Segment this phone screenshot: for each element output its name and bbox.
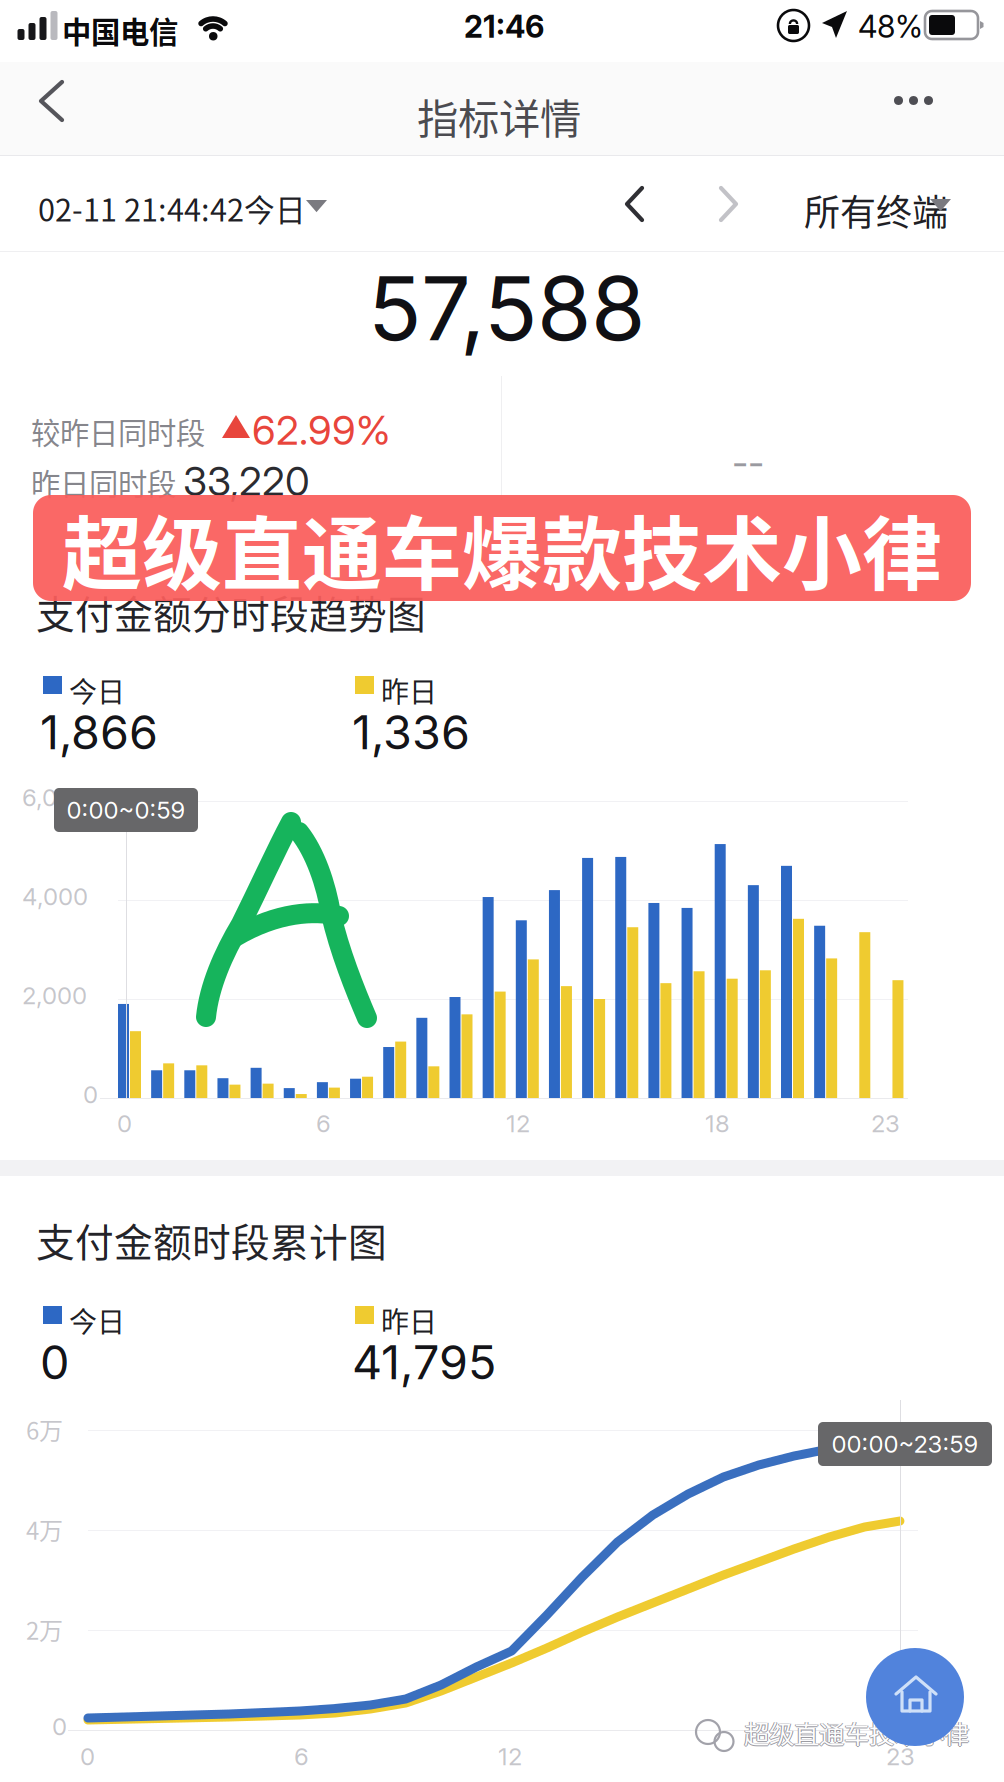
staticText: 0: [117, 1109, 132, 1138]
button[interactable]: Previous: [598, 156, 670, 252]
staticText: 6万: [26, 1412, 63, 1447]
staticText: 33,220: [183, 457, 310, 505]
staticText: 23: [871, 1109, 900, 1138]
staticText: 02-11 21:44:42今日: [38, 186, 306, 230]
staticText: 1,336: [352, 704, 470, 760]
staticText: 6,000: [22, 783, 87, 812]
button[interactable]: Next: [692, 156, 764, 252]
staticText: 2,000: [22, 981, 87, 1010]
staticText: 今日: [69, 670, 125, 710]
staticText: 支付金额时段累计图: [36, 1212, 387, 1268]
staticText: 21:46: [464, 8, 544, 45]
staticText: 超级直通车技术小律: [744, 1715, 969, 1752]
staticText: 1,866: [40, 704, 158, 760]
staticText: 41,795: [352, 1334, 496, 1390]
staticText: 超级直通车爆款技术小律: [62, 490, 942, 606]
staticText: 中国电信: [62, 9, 178, 51]
staticText: 0: [40, 1334, 69, 1390]
staticText: 23: [886, 1742, 915, 1771]
staticText: 18: [705, 1109, 730, 1138]
staticText: 所有终端: [804, 184, 948, 236]
staticText: 昨日: [381, 670, 437, 710]
staticText: 2万: [26, 1612, 63, 1647]
staticText: 今日: [69, 1300, 125, 1340]
staticText: 较昨日同时段: [31, 410, 205, 452]
button[interactable]: Home: [866, 1648, 964, 1746]
staticText: 0: [52, 1712, 67, 1741]
button[interactable]: More: [870, 62, 974, 156]
staticText: 0: [80, 1742, 95, 1771]
button[interactable]: 02-11 21:44:42今日: [0, 156, 360, 252]
button[interactable]: Back: [0, 62, 96, 156]
staticText: 62.99%: [252, 406, 390, 454]
staticText: 超级直通车技术小律: [744, 1714, 969, 1751]
staticText: 57,588: [368, 255, 645, 361]
staticText: 0:00~0:59: [66, 795, 185, 824]
staticText: 4万: [26, 1512, 63, 1547]
staticText: 昨日: [381, 1300, 437, 1340]
staticText: 12: [506, 1109, 530, 1138]
staticText: 0: [83, 1080, 98, 1109]
staticText: --: [732, 440, 764, 485]
staticText: 6: [316, 1109, 331, 1138]
staticText: 6: [294, 1742, 309, 1771]
staticText: 4,000: [22, 882, 88, 911]
staticText: 超级直通车技术小律: [745, 1714, 970, 1751]
staticText: 00:00~23:59: [831, 1429, 978, 1458]
button[interactable]: 所有终端: [804, 156, 1004, 252]
staticText: 48%: [858, 8, 923, 45]
staticText: 12: [498, 1742, 522, 1771]
staticText: 超级直通车技术小律: [743, 1714, 968, 1751]
staticText: 昨日同时段: [31, 461, 176, 503]
staticText: 支付金额分时段趋势图: [36, 584, 426, 640]
staticText: 指标详情: [417, 86, 581, 146]
